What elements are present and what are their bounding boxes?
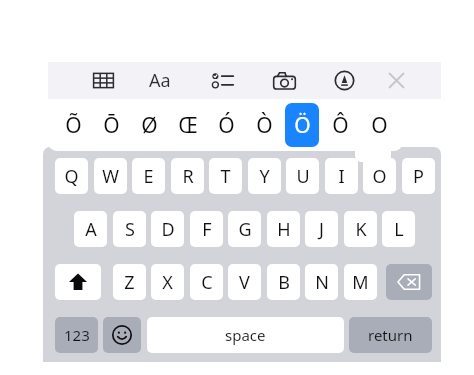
staticText: P <box>413 164 424 189</box>
button[interactable]: Emoji <box>103 317 141 353</box>
button[interactable]: Table <box>86 63 120 98</box>
button[interactable]: G <box>228 211 261 247</box>
button[interactable]: Delete <box>386 264 432 300</box>
button[interactable]: W <box>94 158 127 194</box>
button[interactable]: Checklist <box>205 63 239 98</box>
staticText: S <box>125 217 135 242</box>
staticText: T <box>220 164 231 189</box>
button[interactable]: Q <box>55 158 88 194</box>
button[interactable]: U <box>286 158 319 194</box>
button[interactable]: C <box>190 264 223 300</box>
button[interactable]: F <box>190 211 223 247</box>
staticText: Ø <box>141 111 158 140</box>
staticText: D <box>161 217 175 242</box>
button[interactable]: M <box>344 264 377 300</box>
button[interactable]: Close <box>379 63 413 98</box>
staticText: Aa <box>149 68 171 93</box>
button[interactable]: Ø <box>132 103 166 147</box>
staticText: B <box>278 270 290 295</box>
staticText: O <box>371 111 388 140</box>
staticText: X <box>162 270 173 295</box>
button[interactable]: Õ <box>56 103 90 147</box>
staticText: C <box>201 270 213 295</box>
button[interactable]: X <box>151 264 184 300</box>
staticText: Ó <box>218 111 235 140</box>
button[interactable]: V <box>228 264 261 300</box>
staticText: M <box>352 270 369 295</box>
button[interactable]: Y <box>248 158 281 194</box>
button[interactable]: E <box>132 158 165 194</box>
staticText: return <box>368 325 413 345</box>
staticText: O <box>372 164 387 189</box>
staticText: J <box>319 217 324 242</box>
staticText: Ō <box>103 111 120 140</box>
staticText: L <box>394 217 404 242</box>
button[interactable]: S <box>113 211 146 247</box>
button[interactable]: Ó <box>209 103 243 147</box>
staticText: H <box>277 217 291 242</box>
button[interactable]: K <box>344 211 377 247</box>
staticText: G <box>238 217 252 242</box>
button[interactable]: A <box>74 211 107 247</box>
button[interactable]: Ō <box>94 103 128 147</box>
staticText: 123 <box>64 325 90 345</box>
staticText: Q <box>64 164 79 189</box>
button[interactable]: P <box>402 158 435 194</box>
staticText: A <box>85 217 97 242</box>
button[interactable]: Œ <box>171 103 205 147</box>
button[interactable]: T <box>209 158 242 194</box>
staticText: R <box>182 164 194 189</box>
button[interactable]: H <box>267 211 300 247</box>
button[interactable]: B <box>267 264 300 300</box>
button[interactable]: J <box>305 211 338 247</box>
button[interactable]: Ò <box>247 103 281 147</box>
button[interactable]: N <box>305 264 338 300</box>
button[interactable]: R <box>171 158 204 194</box>
button[interactable]: Markup <box>327 63 361 98</box>
staticText: V <box>239 270 250 295</box>
button[interactable]: Z <box>113 264 146 300</box>
button[interactable]: O <box>363 158 396 194</box>
staticText: space <box>225 325 266 345</box>
staticText: U <box>296 164 310 189</box>
button[interactable]: Camera <box>267 63 301 98</box>
staticText: W <box>102 164 119 189</box>
button[interactable]: Ö <box>285 103 319 147</box>
staticText: Ô <box>332 111 349 140</box>
button[interactable]: O <box>362 103 396 147</box>
staticText: E <box>143 164 154 189</box>
button[interactable]: 123 <box>55 317 98 353</box>
button[interactable]: I <box>325 158 358 194</box>
staticText: F <box>202 217 212 242</box>
staticText: Y <box>259 164 270 189</box>
button[interactable]: Shift <box>55 264 101 300</box>
staticText: Ò <box>256 111 273 140</box>
button[interactable]: Text formatting <box>143 63 177 98</box>
button[interactable]: D <box>151 211 184 247</box>
button[interactable]: return <box>349 317 432 353</box>
staticText: K <box>355 217 367 242</box>
staticText: I <box>338 164 345 189</box>
staticText: Ö <box>294 111 311 140</box>
button[interactable]: space <box>147 317 344 353</box>
staticText: Õ <box>65 111 82 140</box>
staticText: N <box>315 270 329 295</box>
staticText: Z <box>124 270 135 295</box>
button[interactable]: Ô <box>323 103 357 147</box>
button[interactable]: L <box>382 211 415 247</box>
staticText: Œ <box>178 111 198 140</box>
